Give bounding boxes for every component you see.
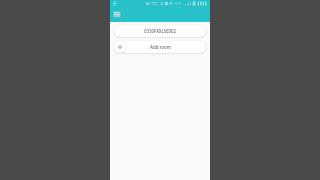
button[interactable]: Open navigation menu <box>113 10 121 18</box>
button[interactable]: 0330FXXLSE002 <box>114 25 206 37</box>
staticText: Add room <box>150 44 171 50</box>
staticText: 0330FXXLSE002 <box>144 28 176 34</box>
button[interactable]: Add <box>114 41 126 53</box>
button[interactable]: Add room <box>120 41 206 53</box>
